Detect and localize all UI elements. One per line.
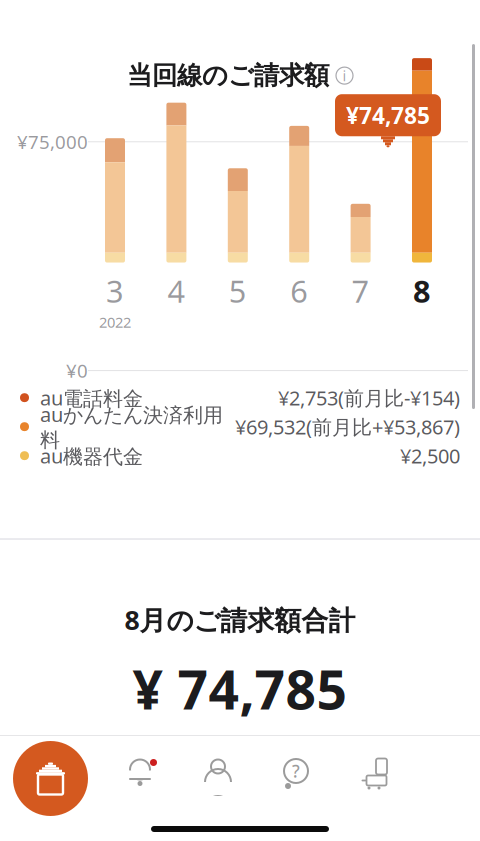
staticText: 8月のご請求額合計 bbox=[124, 602, 355, 637]
staticText: ¥2,753(前月比-¥154) bbox=[278, 384, 460, 411]
staticText: au電話料金 bbox=[40, 384, 143, 411]
staticText: ¥69,532(前月比+¥53,867) bbox=[235, 413, 460, 440]
staticText: 3 bbox=[106, 271, 124, 311]
staticText: 5 bbox=[229, 271, 247, 311]
staticText: 4 bbox=[167, 271, 185, 311]
staticText: au機器代金 bbox=[40, 442, 143, 469]
staticText: i bbox=[342, 66, 346, 85]
staticText: 次回請求情報更新日2022/09/10 bbox=[89, 769, 390, 797]
staticText: ¥ 74,785 bbox=[132, 653, 347, 724]
staticText: 前月比 +¥53,713 bbox=[160, 736, 319, 765]
staticText: ¥74,785 bbox=[346, 100, 430, 130]
button[interactable]: ヘルプ bbox=[257, 744, 335, 804]
staticText: ? bbox=[292, 759, 300, 782]
staticText: 7 bbox=[352, 271, 370, 311]
button[interactable]: 当回線のご請求額 bbox=[127, 60, 353, 91]
staticText: 2022 bbox=[99, 312, 131, 332]
button[interactable]: ホーム bbox=[13, 741, 88, 816]
staticText: 当回線のご請求額 bbox=[127, 60, 329, 91]
staticText: auかんたん決済利用料 bbox=[40, 401, 223, 452]
staticText: ¥75,000 bbox=[17, 129, 88, 154]
staticText: 6 bbox=[290, 271, 308, 311]
staticText: ¥0 bbox=[66, 358, 88, 383]
button[interactable]: お知らせ bbox=[101, 744, 179, 804]
button[interactable]: マイページ bbox=[179, 744, 257, 804]
staticText: ¥2,500 bbox=[400, 442, 460, 469]
staticText: 8 bbox=[413, 271, 431, 311]
button[interactable]: ショップ bbox=[335, 744, 413, 804]
